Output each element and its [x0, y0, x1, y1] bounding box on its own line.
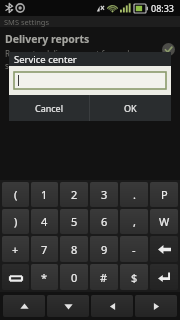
button[interactable]: 3 — [90, 182, 118, 207]
staticText: 1 — [41, 187, 48, 202]
button[interactable]: Down — [47, 295, 89, 317]
button[interactable]: Enter — [150, 264, 178, 290]
button[interactable]: 5 — [60, 209, 88, 234]
button[interactable]: # — [90, 264, 118, 290]
staticText: OK — [124, 102, 137, 114]
button[interactable]: P — [150, 182, 178, 207]
button[interactable]: 8 — [60, 236, 88, 262]
staticText: W — [159, 214, 170, 229]
button[interactable]: , — [120, 209, 148, 234]
button[interactable]: OK — [90, 95, 171, 121]
button[interactable]: Cancel — [9, 95, 89, 121]
button[interactable]: * — [31, 264, 58, 290]
button[interactable]: 4 — [31, 209, 58, 234]
button[interactable]: Right — [135, 295, 177, 317]
button[interactable]: 6 — [90, 209, 118, 234]
staticText: 6 — [101, 214, 108, 229]
staticText: 3 — [101, 187, 108, 202]
staticText: + — [12, 242, 19, 257]
staticText: - — [132, 242, 136, 257]
staticText: $ — [131, 270, 138, 285]
button[interactable]: + — [2, 236, 29, 262]
staticText: 7 — [41, 242, 48, 257]
staticText: Service center — [14, 53, 77, 66]
button[interactable]: 1 — [31, 182, 58, 207]
staticText: SMS settings — [4, 17, 49, 27]
button[interactable]: Backspace — [150, 236, 178, 262]
staticText: Request a delivery report for each messa… — [5, 48, 159, 59]
button[interactable] — [14, 72, 166, 89]
staticText: ) — [14, 214, 18, 229]
button[interactable]: . — [120, 182, 148, 207]
staticText: 2 — [71, 187, 78, 202]
staticText: 5 — [71, 214, 78, 229]
button[interactable]: Space — [2, 264, 29, 290]
button[interactable]: ) — [2, 209, 29, 234]
staticText: # — [100, 270, 108, 285]
staticText: 9 — [101, 242, 108, 257]
staticText: P — [161, 187, 168, 202]
button[interactable]: - — [120, 236, 148, 262]
button[interactable]: 7 — [31, 236, 58, 262]
button[interactable]: W — [150, 209, 178, 234]
staticText: 08:33 — [151, 2, 175, 14]
button[interactable]: ( — [2, 182, 29, 207]
staticText: * — [41, 270, 48, 285]
button[interactable]: 0 — [60, 264, 88, 290]
staticText: . — [133, 187, 136, 202]
button[interactable]: $ — [120, 264, 148, 290]
staticText: Cancel — [35, 102, 64, 114]
staticText: 0 — [71, 270, 78, 285]
button[interactable]: 9 — [90, 236, 118, 262]
staticText: ( — [14, 187, 18, 202]
button[interactable]: 2 — [60, 182, 88, 207]
staticText: , — [133, 214, 136, 229]
staticText: Delivery reports — [5, 32, 90, 46]
button[interactable]: Up — [3, 295, 45, 317]
staticText: 4 — [41, 214, 48, 229]
staticText: send — [5, 60, 24, 71]
staticText: 8 — [71, 242, 78, 257]
button[interactable]: Left — [91, 295, 133, 317]
